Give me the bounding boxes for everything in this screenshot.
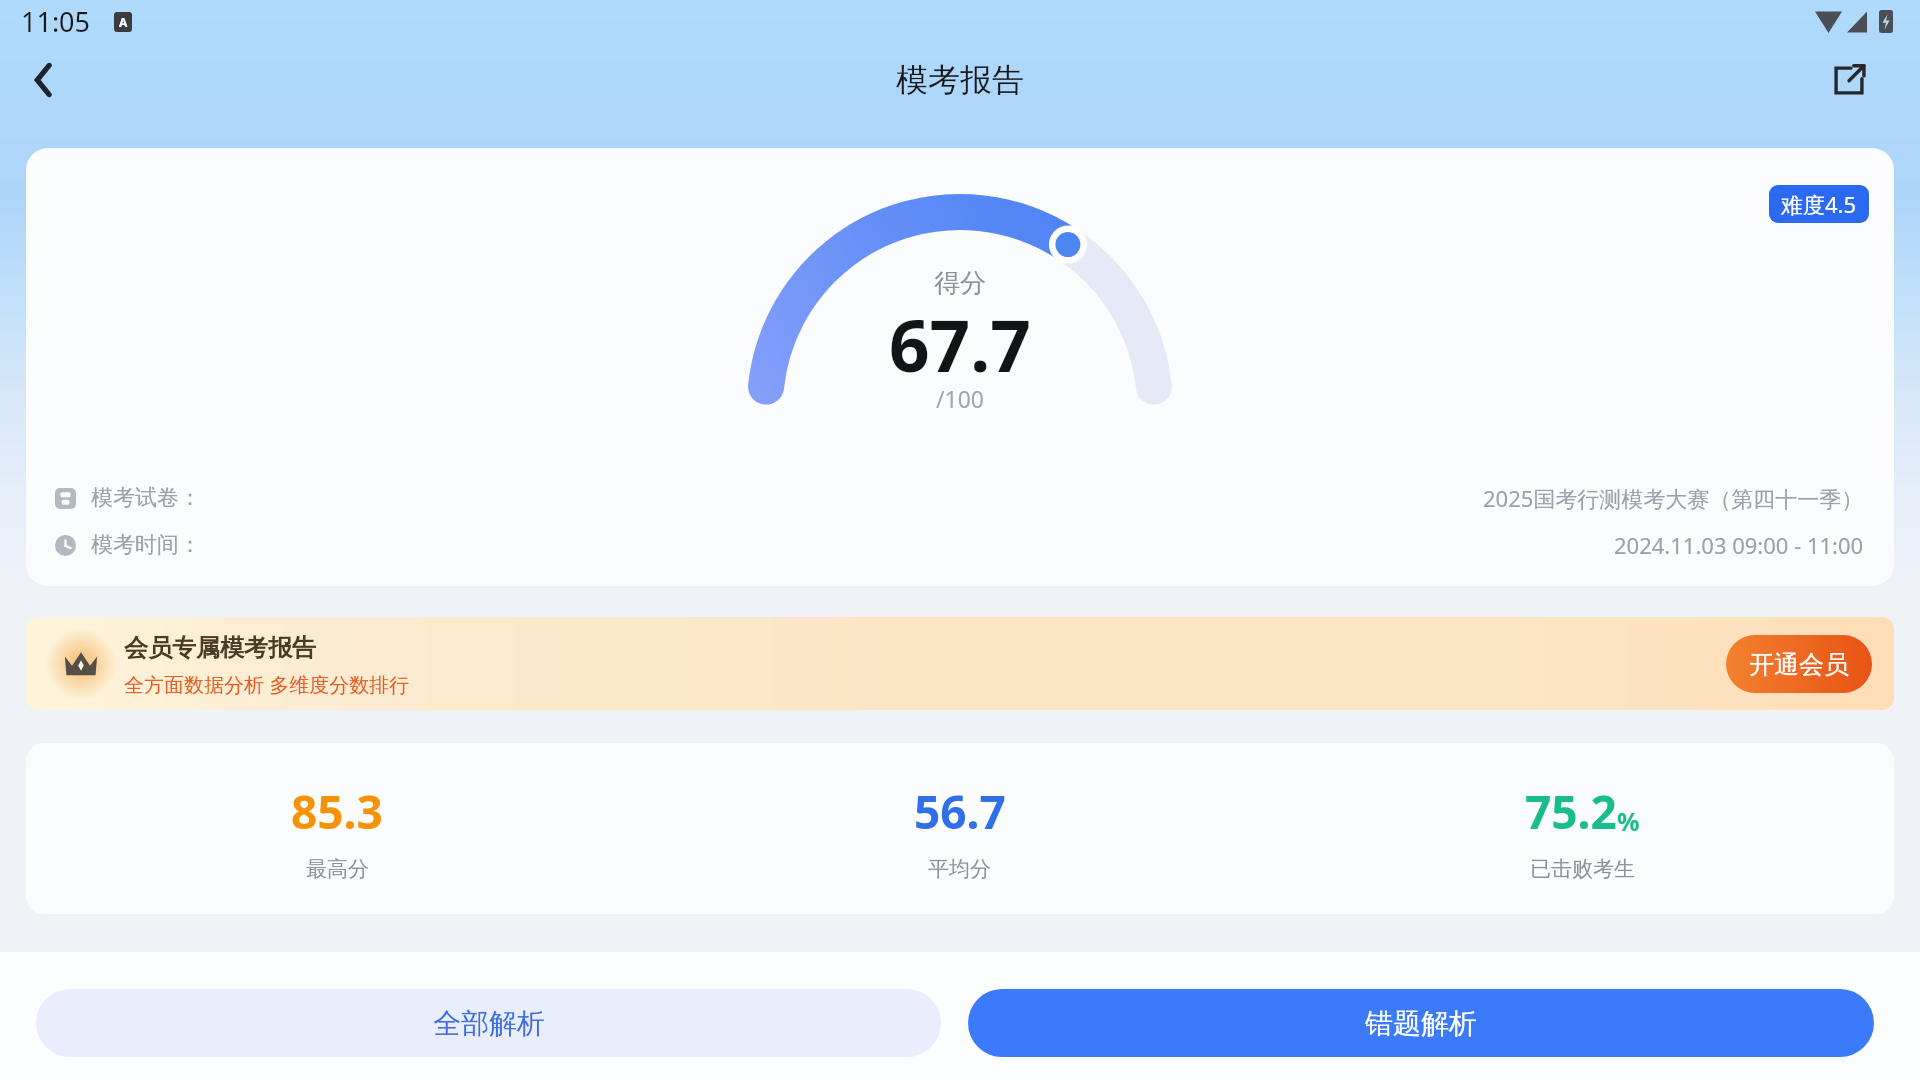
staticText: 全部解析 (433, 1006, 545, 1041)
staticText: 85.3 (291, 780, 383, 843)
staticText: 全方面数据分析 多维度分数排行 (124, 671, 410, 698)
staticText: A (119, 14, 128, 30)
staticText: 会员专属模考报告 (124, 633, 316, 663)
staticText: 错题解析 (1365, 1006, 1477, 1041)
button[interactable]: 全部解析 (36, 989, 941, 1057)
staticText: 平均分 (928, 856, 991, 882)
button[interactable]: 开通会员 (1726, 635, 1872, 693)
staticText: 模考时间： (91, 531, 201, 559)
staticText: 已击败考生 (1530, 856, 1635, 882)
staticText: 最高分 (306, 856, 369, 882)
staticText: 开通会员 (1749, 649, 1849, 680)
staticText: 67.7 (889, 296, 1031, 393)
button[interactable]: 会员专属模考报告 (26, 617, 1894, 710)
staticText: 75.2 (1525, 780, 1617, 843)
staticText: 11:05 (21, 3, 91, 40)
staticText: 2025国考行测模考大赛（第四十一季） (1483, 483, 1864, 513)
staticText: 模考试卷： (91, 484, 201, 512)
staticText: 56.7 (914, 780, 1006, 843)
staticText: 2024.11.03 09:00 - 11:00 (1614, 530, 1864, 560)
staticText: 得分 (934, 267, 986, 300)
staticText: 难度4.5 (1781, 189, 1857, 219)
button[interactable]: Back (12, 49, 74, 111)
staticText: % (1617, 804, 1640, 838)
staticText: /100 (936, 383, 985, 414)
staticText: 模考报告 (896, 60, 1024, 100)
button[interactable]: Share (1825, 56, 1873, 104)
button[interactable]: 错题解析 (968, 989, 1874, 1057)
